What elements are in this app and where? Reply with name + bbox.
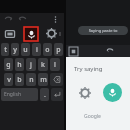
staticText: y: [13, 45, 17, 55]
staticText: i: [36, 45, 38, 55]
button[interactable]: .: [40, 88, 49, 101]
button[interactable]: Microphone: [103, 83, 122, 102]
button[interactable]: t: [1, 43, 9, 56]
button[interactable]: Settings: [79, 87, 91, 99]
button[interactable]: m: [38, 73, 48, 86]
staticText: v: [7, 75, 11, 85]
button[interactable]: i: [32, 43, 41, 56]
button[interactable]: v: [4, 73, 13, 86]
button[interactable]: Redo: [17, 14, 28, 25]
staticText: p: [56, 45, 61, 55]
button[interactable]: u: [21, 43, 30, 56]
button[interactable]: Voice input: [24, 27, 38, 41]
staticText: l: [54, 60, 56, 70]
staticText: u: [23, 45, 28, 55]
staticText: g: [6, 60, 11, 70]
button[interactable]: Backspace: [50, 73, 63, 86]
staticText: o: [45, 45, 50, 55]
staticText: Google: [84, 113, 130, 120]
staticText: t: [4, 45, 7, 55]
staticText: n: [29, 75, 34, 85]
staticText: m: [40, 75, 47, 85]
button[interactable]: Back: [105, 46, 115, 56]
staticText: Saying paste to textmessage: [78, 28, 128, 33]
staticText: .: [44, 90, 46, 100]
button[interactable]: j: [26, 58, 36, 71]
button[interactable]: p: [54, 43, 63, 56]
button[interactable]: l: [50, 58, 60, 71]
button[interactable]: Settings: [46, 28, 57, 39]
staticText: b: [17, 75, 22, 85]
button[interactable]: g: [4, 58, 13, 71]
button[interactable]: b: [15, 73, 24, 86]
button[interactable]: h: [15, 58, 24, 71]
staticText: j: [30, 60, 32, 70]
staticText: English: [4, 91, 22, 98]
button[interactable]: More options: [50, 14, 61, 25]
button[interactable]: Keyboard: [69, 47, 78, 56]
button[interactable]: y: [11, 43, 19, 56]
button[interactable]: Saying paste to textmessage: [78, 26, 128, 35]
button[interactable]: o: [43, 43, 52, 56]
button[interactable]: Undo: [3, 14, 14, 25]
button[interactable]: k: [38, 58, 48, 71]
button[interactable]: English: [1, 88, 38, 101]
staticText: Try saying something: [74, 65, 130, 73]
staticText: h: [17, 60, 22, 70]
button[interactable]: n: [26, 73, 36, 86]
button[interactable]: Enter: [51, 88, 63, 101]
staticText: k: [41, 60, 45, 70]
button[interactable]: Stickers: [4, 28, 16, 40]
